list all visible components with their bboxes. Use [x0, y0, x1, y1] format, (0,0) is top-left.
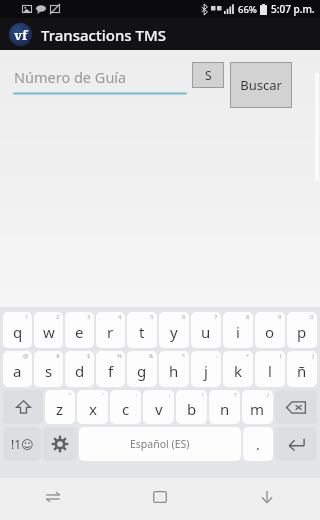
staticText: Buscar: [240, 76, 282, 94]
staticText: t: [139, 322, 145, 342]
button[interactable]: #: [34, 351, 63, 387]
button[interactable]: Recents: [106, 478, 213, 516]
staticText: f: [108, 361, 114, 381]
button[interactable]: Shift: [3, 390, 43, 424]
staticText: 1: [25, 313, 29, 321]
staticText: z: [56, 399, 64, 419]
staticText: ;: [169, 391, 171, 399]
staticText: u: [201, 322, 211, 342]
staticText: %: [117, 352, 122, 360]
staticText: ": [69, 391, 72, 399]
button[interactable]: +: [223, 351, 253, 387]
staticText: n: [220, 399, 230, 419]
staticText: o: [265, 322, 275, 342]
staticText: ': [103, 391, 105, 399]
button[interactable]: 9: [255, 312, 285, 348]
staticText: :: [136, 391, 138, 399]
button[interactable]: -: [191, 351, 221, 387]
staticText: *: [182, 352, 186, 360]
button[interactable]: %: [96, 351, 125, 387]
button[interactable]: 1: [3, 312, 32, 348]
button[interactable]: *: [159, 351, 189, 387]
staticText: Número de Guía: [14, 67, 127, 87]
button[interactable]: ": [45, 390, 75, 424]
staticText: q: [13, 322, 23, 342]
staticText: 2: [56, 313, 60, 321]
staticText: w: [43, 322, 55, 342]
button[interactable]: ?: [209, 390, 240, 424]
staticText: !: [202, 391, 204, 399]
button[interactable]: 4: [96, 312, 125, 348]
staticText: .: [256, 435, 260, 454]
button[interactable]: .: [243, 427, 273, 461]
staticText: r: [107, 322, 114, 342]
staticText: x: [89, 399, 97, 419]
button[interactable]: Switch keyboard: [0, 478, 106, 516]
staticText: s: [45, 361, 53, 381]
button[interactable]: 5: [127, 312, 157, 348]
staticText: b: [187, 399, 197, 419]
staticText: 0: [310, 313, 314, 321]
button[interactable]: !: [176, 390, 207, 424]
staticText: Transactions TMS: [41, 25, 166, 45]
button[interactable]: @: [3, 351, 32, 387]
staticText: vf: [14, 26, 28, 44]
button[interactable]: :: [110, 390, 141, 424]
button[interactable]: Symbols: [3, 427, 41, 461]
staticText: a: [13, 361, 22, 381]
staticText: v: [155, 399, 163, 419]
staticText: Español (ES): [130, 437, 190, 451]
staticText: #: [56, 352, 60, 360]
button[interactable]: Enter: [275, 427, 317, 461]
button[interactable]: 6: [159, 312, 189, 348]
button[interactable]: ): [287, 351, 317, 387]
staticText: c: [122, 399, 130, 419]
button[interactable]: ;: [143, 390, 174, 424]
button[interactable]: 0: [287, 312, 317, 348]
staticText: m: [250, 399, 265, 419]
staticText: 9: [278, 313, 282, 321]
staticText: &: [149, 352, 154, 360]
staticText: +: [246, 352, 250, 360]
button[interactable]: 2: [34, 312, 63, 348]
staticText: k: [234, 361, 243, 381]
staticText: -: [216, 352, 218, 360]
staticText: 66%: [238, 3, 257, 16]
button[interactable]: Número de Guía: [14, 62, 186, 95]
staticText: g: [137, 361, 147, 381]
staticText: S: [205, 67, 212, 83]
staticText: i: [236, 322, 240, 342]
staticText: /: [267, 391, 270, 399]
button[interactable]: Backspace: [275, 390, 317, 424]
staticText: j: [204, 361, 208, 381]
staticText: p: [297, 322, 307, 342]
button[interactable]: 3: [65, 312, 94, 348]
button[interactable]: &: [127, 351, 157, 387]
staticText: 3: [87, 313, 91, 321]
button[interactable]: 8: [223, 312, 253, 348]
button[interactable]: (: [255, 351, 285, 387]
button[interactable]: Keyboard settings: [43, 427, 77, 461]
staticText: e: [75, 322, 84, 342]
button[interactable]: 7: [191, 312, 221, 348]
staticText: ): [312, 352, 314, 360]
staticText: @: [23, 352, 29, 360]
staticText: 8: [246, 313, 250, 321]
staticText: ñ: [297, 361, 307, 381]
staticText: d: [75, 361, 85, 381]
button[interactable]: $: [65, 351, 94, 387]
button[interactable]: /: [242, 390, 273, 424]
staticText: !1☺: [11, 436, 34, 452]
staticText: (: [280, 352, 282, 360]
staticText: h: [169, 361, 179, 381]
staticText: y: [170, 322, 178, 342]
staticText: $: [87, 352, 91, 360]
button[interactable]: Buscar: [231, 63, 291, 107]
button[interactable]: ': [77, 390, 108, 424]
staticText: 5: [150, 313, 154, 321]
staticText: l: [268, 361, 272, 381]
staticText: ?: [234, 391, 237, 399]
button[interactable]: Hide keyboard: [213, 478, 320, 516]
button[interactable]: S: [193, 63, 223, 87]
button[interactable]: Español (ES): [79, 427, 241, 461]
